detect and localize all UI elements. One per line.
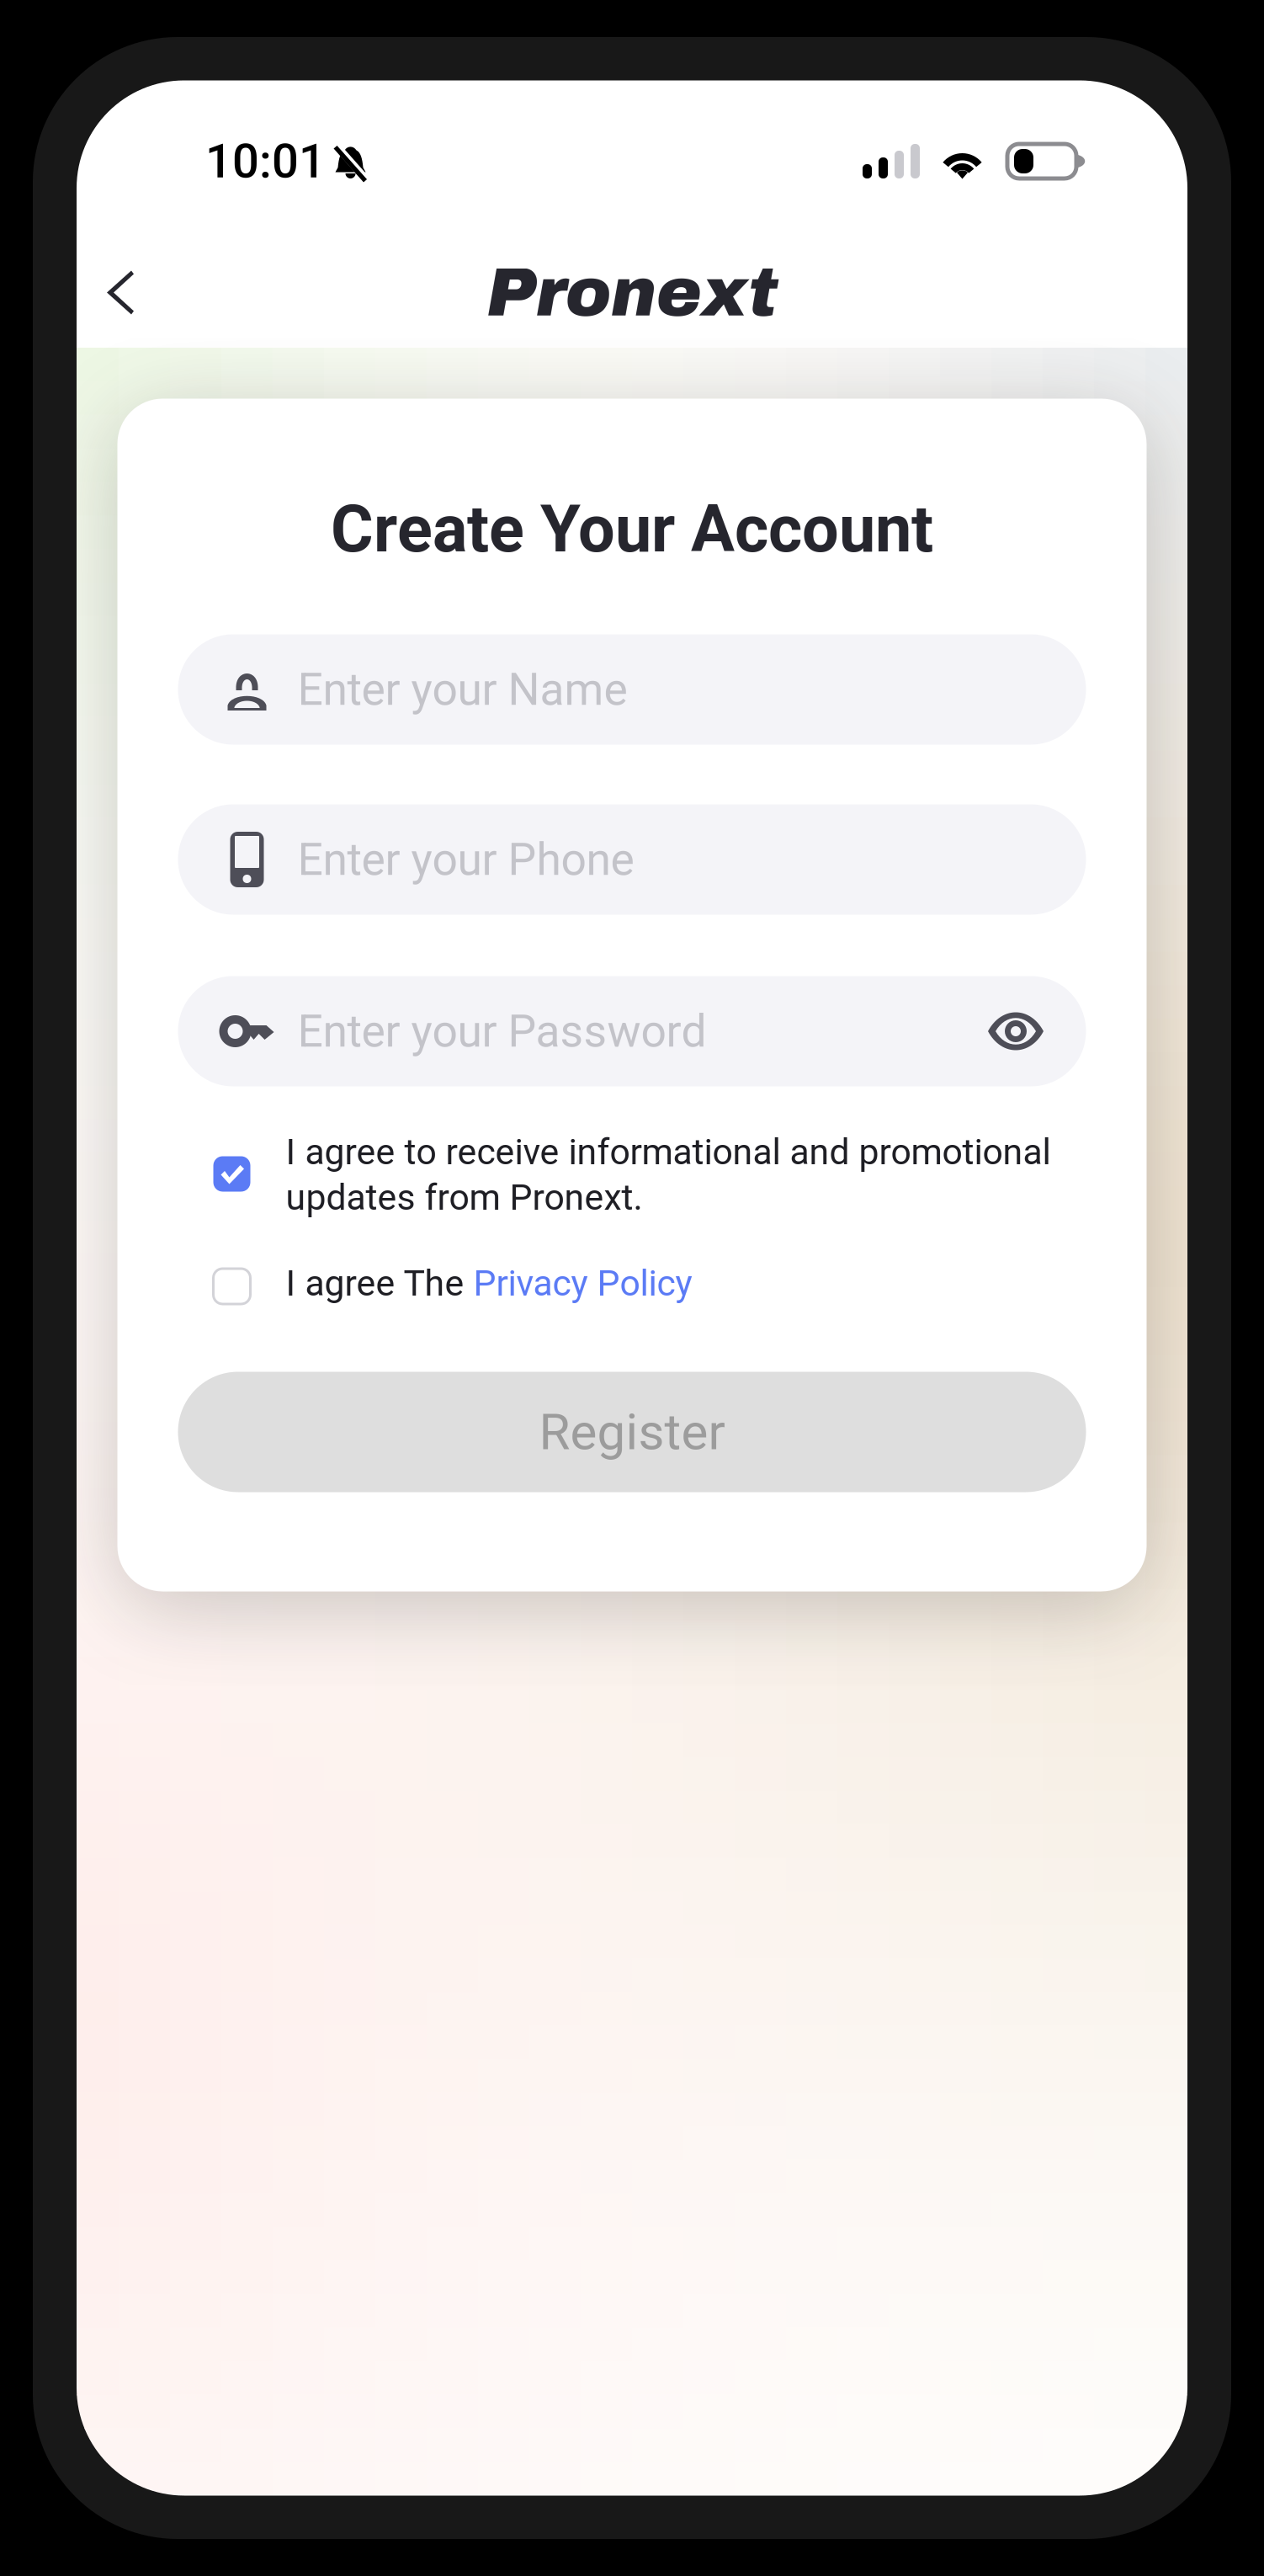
- button[interactable]: Back: [77, 249, 164, 336]
- staticText: Create Your Account: [331, 491, 933, 567]
- staticText: Enter your Name: [297, 663, 627, 716]
- staticText: 10:01: [205, 134, 326, 189]
- staticText: Enter your Phone: [297, 833, 634, 886]
- button[interactable]: I agree The: [178, 1256, 1086, 1303]
- staticText: I agree The: [286, 1262, 473, 1304]
- button[interactable]: Show password: [945, 976, 1086, 1086]
- button[interactable]: Register: [178, 1372, 1086, 1492]
- staticText: Privacy Policy: [473, 1262, 692, 1304]
- staticText: I agree to receive informational and pro…: [286, 1131, 1051, 1173]
- button[interactable]: I agree to receive informational and pro…: [178, 1121, 1086, 1225]
- staticText: updates from Pronext.: [286, 1176, 643, 1219]
- staticText: Pronext: [486, 255, 778, 330]
- staticText: Enter your Password: [297, 1005, 706, 1058]
- staticText: Register: [539, 1402, 725, 1462]
